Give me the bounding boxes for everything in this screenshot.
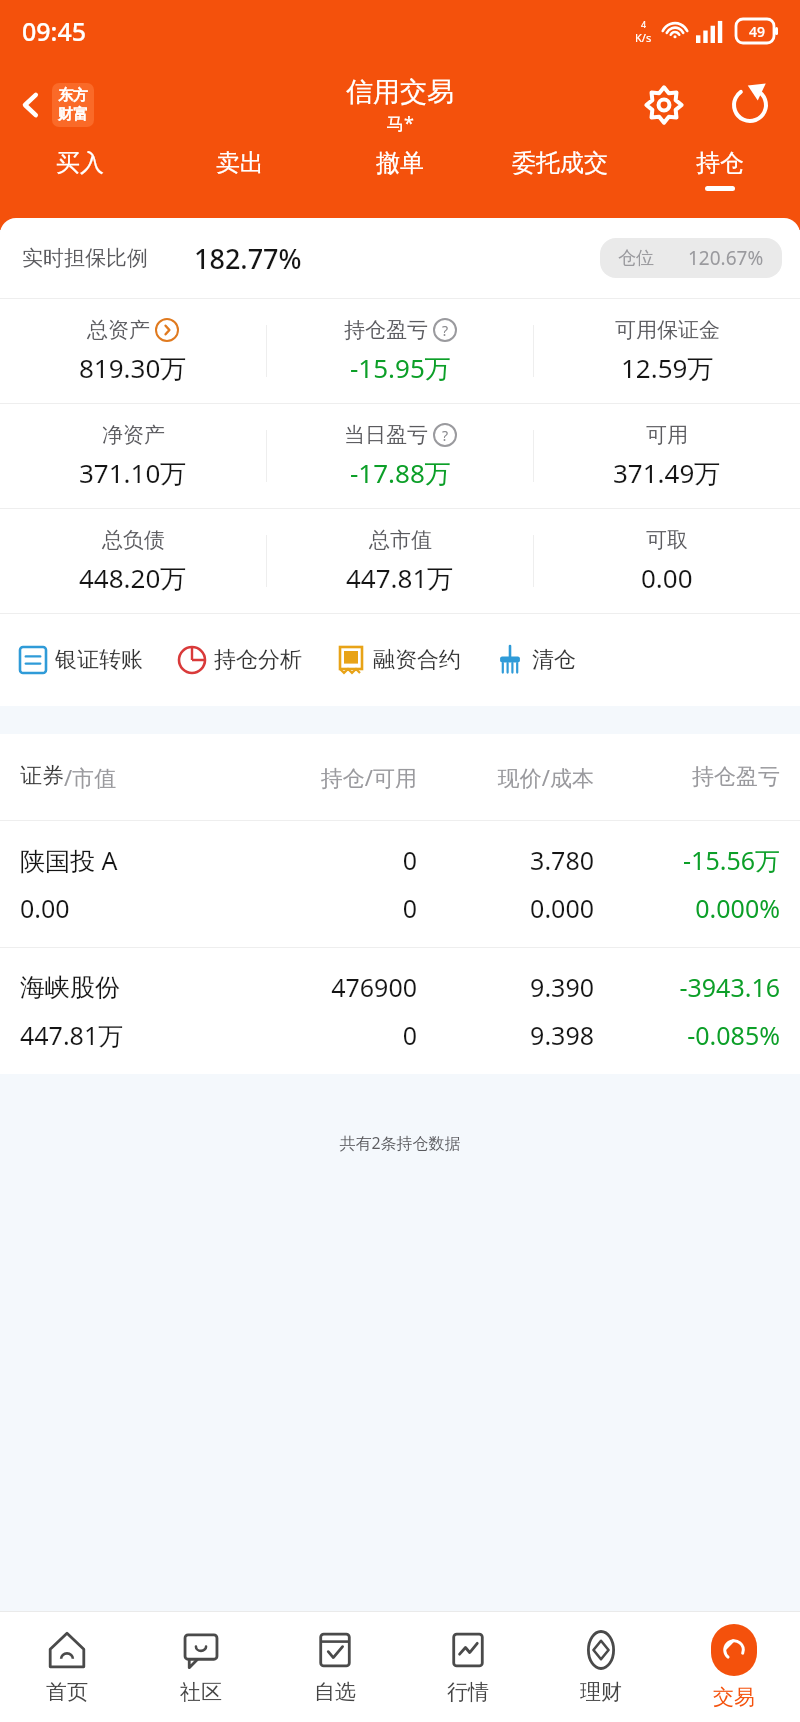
staticText: 0.00 xyxy=(641,560,693,595)
staticText: 9.390 xyxy=(417,970,594,1004)
staticText: -15.95万 xyxy=(350,350,451,386)
button[interactable]: 海峡股份 xyxy=(0,948,800,1074)
button[interactable]: 净资产 xyxy=(0,404,266,508)
staticText: 可取 xyxy=(646,527,688,553)
staticText: 共有2条持仓数据 xyxy=(0,1132,800,1154)
staticText: 净资产 xyxy=(102,422,165,448)
button[interactable]: 买入 xyxy=(0,148,160,216)
staticText: 当日盈亏 xyxy=(344,422,428,448)
staticText: 买入 xyxy=(56,148,104,178)
staticText: 行情 xyxy=(447,1679,489,1705)
staticText: 448.20万 xyxy=(79,560,187,596)
staticText: 182.77% xyxy=(194,240,302,277)
staticText: 撤单 xyxy=(376,148,424,178)
staticText: 0.00 xyxy=(20,891,240,925)
button[interactable]: 交易 xyxy=(667,1612,800,1722)
staticText: 0 xyxy=(240,1018,417,1052)
staticText: 819.30万 xyxy=(79,350,187,386)
button[interactable]: 行情 xyxy=(401,1612,534,1722)
button[interactable]: 返回 东方财富 xyxy=(10,77,100,133)
staticText: -17.88万 xyxy=(350,455,451,491)
staticText: 陕国投 A xyxy=(20,843,240,877)
staticText: 总负债 xyxy=(102,527,165,553)
staticText: 持仓盈亏 xyxy=(594,763,780,791)
staticText: 12.59万 xyxy=(621,350,714,386)
button[interactable]: 持仓分析 xyxy=(177,639,302,681)
staticText: 交易 xyxy=(713,1684,755,1710)
button[interactable]: 卖出 xyxy=(160,148,320,216)
button[interactable]: 可用 xyxy=(534,404,800,508)
button[interactable]: 自选 xyxy=(268,1612,401,1722)
button[interactable]: 社区 xyxy=(134,1612,268,1722)
staticText: 总市值 xyxy=(369,527,432,553)
staticText: 财富 xyxy=(58,105,88,124)
staticText: 可用保证金 xyxy=(615,317,720,343)
staticText: 自选 xyxy=(314,1679,356,1705)
staticText: 首页 xyxy=(46,1679,88,1705)
staticText: 马* xyxy=(386,111,414,136)
staticText: K/s xyxy=(635,30,652,45)
button[interactable]: 总资产 xyxy=(0,299,266,403)
staticText: 清仓 xyxy=(532,646,576,674)
staticText: 49 xyxy=(749,22,766,41)
staticText: 3.780 xyxy=(417,843,594,877)
staticText: 融资合约 xyxy=(373,646,461,674)
staticText: 仓位 xyxy=(618,247,654,270)
staticText: 现价/成本 xyxy=(417,762,594,792)
staticText: 9.398 xyxy=(417,1018,594,1052)
staticText: -3943.16 xyxy=(594,970,780,1004)
staticText: 可用 xyxy=(646,422,688,448)
staticText: 持仓分析 xyxy=(214,646,302,674)
staticText: 476900 xyxy=(240,970,417,1004)
staticText: 卖出 xyxy=(216,148,264,178)
staticText: 0 xyxy=(240,843,417,877)
staticText: 持仓 xyxy=(696,148,744,178)
staticText: 理财 xyxy=(580,1679,622,1705)
staticText: 0.000% xyxy=(594,891,780,925)
button[interactable]: 可取 xyxy=(534,509,800,613)
button[interactable]: 理财 xyxy=(534,1612,667,1722)
button[interactable]: 仓位 xyxy=(600,238,782,278)
button[interactable]: 持仓盈亏 xyxy=(267,299,533,403)
staticText: 实时担保比例 xyxy=(22,245,148,271)
staticText: 银证转账 xyxy=(55,646,143,674)
staticText: 371.10万 xyxy=(79,455,187,491)
staticText: 持仓/可用 xyxy=(240,762,417,792)
button[interactable]: 委托成交 xyxy=(480,148,640,216)
staticText: 447.81万 xyxy=(346,560,454,596)
button[interactable]: 刷新 xyxy=(722,77,778,133)
button[interactable]: 清仓 xyxy=(495,639,576,681)
staticText: 社区 xyxy=(180,1679,222,1705)
button[interactable]: 可用保证金 xyxy=(534,299,800,403)
staticText: 持仓盈亏 xyxy=(344,317,428,343)
staticText: ? xyxy=(442,321,449,340)
button[interactable]: 撤单 xyxy=(320,148,480,216)
staticText: -0.085% xyxy=(594,1018,780,1052)
staticText: 证券 xyxy=(20,762,64,790)
staticText: 信用交易 xyxy=(346,75,454,109)
staticText: -15.56万 xyxy=(594,843,780,877)
staticText: 371.49万 xyxy=(613,455,721,491)
staticText: 447.81万 xyxy=(20,1018,240,1052)
staticText: 0 xyxy=(240,891,417,925)
button[interactable]: 总负债 xyxy=(0,509,266,613)
button[interactable]: 持仓 xyxy=(640,148,800,216)
button[interactable]: 融资合约 xyxy=(336,639,461,681)
button[interactable]: 当日盈亏 xyxy=(267,404,533,508)
button[interactable]: 首页 xyxy=(0,1612,134,1722)
button[interactable]: 总市值 xyxy=(267,509,533,613)
staticText: 120.67% xyxy=(688,245,764,271)
staticText: 海峡股份 xyxy=(20,972,240,1003)
staticText: 09:45 xyxy=(22,14,87,48)
button[interactable]: 设置 xyxy=(636,77,692,133)
staticText: 东方 xyxy=(58,86,88,105)
button[interactable]: 银证转账 xyxy=(18,639,143,681)
staticText: 0.000 xyxy=(417,891,594,925)
staticText: 委托成交 xyxy=(512,148,608,178)
staticText: 总资产 xyxy=(87,317,150,343)
staticText: ? xyxy=(442,426,449,445)
staticText: /市值 xyxy=(64,762,117,792)
button[interactable]: 陕国投 A xyxy=(0,821,800,947)
staticText: 4 xyxy=(641,18,647,30)
